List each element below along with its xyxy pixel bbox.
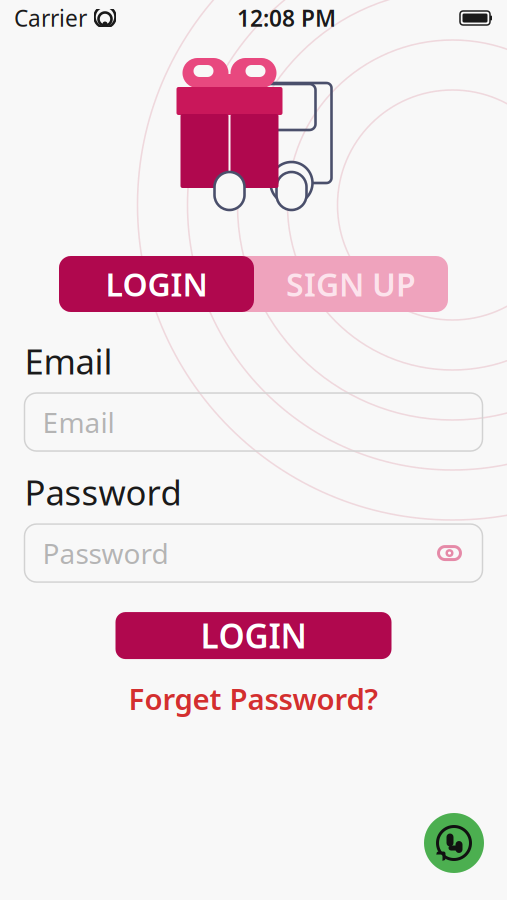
staticText: Password [24, 469, 181, 515]
button[interactable]: LOGIN [115, 612, 391, 659]
button[interactable]: SIGN UP [254, 256, 448, 312]
staticText: 12:08 PM [237, 3, 336, 33]
staticText: LOGIN [200, 613, 306, 658]
staticText: SIGN UP [286, 263, 416, 305]
button[interactable]: LOGIN [59, 256, 254, 312]
staticText: Email [42, 403, 114, 441]
button[interactable]: Show password [434, 540, 464, 566]
staticText: Forget Password? [128, 679, 378, 718]
staticText: Email [24, 338, 112, 384]
staticText: Password [42, 534, 168, 572]
button[interactable]: Forget Password? [114, 671, 392, 726]
staticText: LOGIN [105, 263, 207, 305]
button[interactable]: Chat on WhatsApp [424, 813, 484, 873]
staticText: Carrier [14, 3, 87, 33]
